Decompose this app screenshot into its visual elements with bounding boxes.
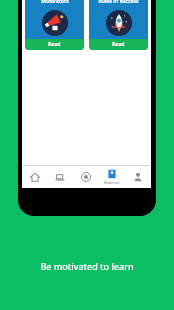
staticText: Motivators bbox=[41, 0, 69, 5]
staticText: Read bbox=[48, 41, 61, 48]
button[interactable]: Library bbox=[47, 166, 73, 188]
button[interactable]: Home bbox=[22, 166, 47, 188]
button[interactable]: Rules of success bbox=[89, 0, 148, 50]
button[interactable]: Profile bbox=[125, 166, 151, 188]
staticText: Rules of success bbox=[98, 0, 139, 5]
button[interactable]: Motivators bbox=[25, 0, 84, 50]
button[interactable]: Goals bbox=[73, 166, 99, 188]
button[interactable]: Material bbox=[99, 166, 125, 188]
staticText: Be motivated to learn bbox=[40, 260, 134, 272]
staticText: Read bbox=[112, 41, 125, 48]
staticText: Material bbox=[104, 180, 120, 185]
